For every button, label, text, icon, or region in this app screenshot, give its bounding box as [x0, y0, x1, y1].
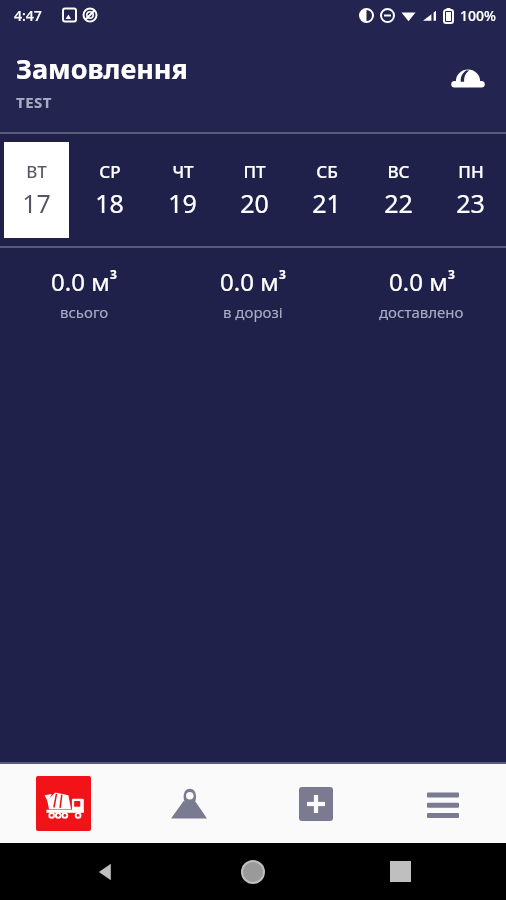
button[interactable]: 0.0 м [337, 248, 506, 338]
staticText: ПН [458, 160, 484, 183]
button[interactable]: 0.0 м [168, 248, 337, 338]
staticText: всього [60, 302, 109, 322]
staticText: ЧТ [172, 160, 194, 183]
button[interactable]: Map [126, 764, 252, 843]
staticText: СБ [316, 160, 338, 183]
button[interactable]: Add [252, 764, 379, 843]
staticText: 3 [448, 266, 455, 282]
staticText: ПТ [243, 160, 266, 183]
staticText: 0.0 м [389, 265, 448, 298]
staticText: доставлено [379, 302, 464, 322]
staticText: СР [99, 160, 121, 183]
staticText: Замовлення [16, 50, 188, 87]
staticText: 23 [456, 186, 485, 220]
staticText: 21 [312, 186, 341, 220]
staticText: 3 [279, 266, 286, 282]
button[interactable]: Profile [444, 57, 492, 105]
button[interactable]: ВТ [4, 142, 69, 238]
staticText: 3 [110, 266, 117, 282]
staticText: 22 [384, 186, 413, 220]
staticText: 19 [168, 186, 197, 220]
button[interactable]: СР [77, 142, 142, 238]
button[interactable]: ВС [366, 142, 430, 238]
staticText: 17 [22, 186, 51, 220]
button[interactable]: ЧТ [150, 142, 214, 238]
other: Home [241, 860, 265, 884]
staticText: 0.0 м [51, 265, 110, 298]
button[interactable]: Menu [379, 764, 506, 843]
button[interactable]: Orders [0, 764, 126, 843]
staticText: ВТ [26, 160, 47, 183]
staticText: 20 [240, 186, 269, 220]
staticText: в дорозі [223, 302, 283, 322]
button[interactable]: ПТ [222, 142, 286, 238]
staticText: 18 [95, 186, 124, 220]
button[interactable]: 0.0 м [0, 248, 168, 338]
button[interactable]: ПН [438, 142, 502, 238]
other: Back [95, 861, 117, 883]
staticText: TEST [16, 92, 52, 112]
staticText: 0.0 м [220, 265, 279, 298]
button[interactable]: СБ [294, 142, 358, 238]
staticText: 100% [460, 6, 496, 25]
staticText: 4:47 [14, 6, 42, 25]
staticText: ВС [387, 160, 410, 183]
